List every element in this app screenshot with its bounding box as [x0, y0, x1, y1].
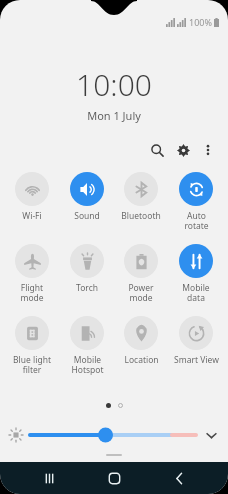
staticText: Flight mode — [20, 282, 44, 303]
staticText: 100% — [189, 16, 212, 28]
button[interactable]: Search — [144, 137, 170, 163]
staticText: 10:00 — [76, 64, 152, 105]
button[interactable]: Location — [115, 315, 167, 367]
button[interactable]: Wi-Fi — [6, 171, 58, 223]
staticText: Power mode — [128, 282, 154, 303]
staticText: Blue light filter — [13, 354, 51, 375]
button[interactable]: Brightness — [30, 424, 196, 446]
button[interactable]: Power mode — [115, 243, 167, 304]
button[interactable]: Expand — [200, 424, 222, 446]
button[interactable]: Flight mode — [6, 243, 58, 304]
staticText: Mon 1 July — [87, 108, 141, 123]
staticText: Smart View — [174, 354, 219, 366]
staticText: Torch — [76, 282, 98, 294]
button[interactable]: Blue light filter — [6, 315, 58, 376]
button[interactable]: Auto rotate — [170, 171, 222, 232]
staticText: Sound — [74, 210, 100, 222]
staticText: Wi-Fi — [22, 210, 42, 222]
button[interactable]: Bluetooth — [115, 171, 167, 223]
button[interactable]: Settings — [170, 137, 196, 163]
button[interactable]: Recent apps — [33, 462, 65, 494]
button[interactable]: Mobile data — [170, 243, 222, 304]
button[interactable]: Home — [98, 462, 130, 494]
button[interactable]: Sound — [61, 171, 113, 223]
staticText: Auto rotate — [184, 210, 209, 231]
button[interactable]: Smart View — [170, 315, 222, 367]
staticText: Mobile Hotspot — [71, 354, 104, 375]
button[interactable]: Mobile Hotspot — [61, 315, 113, 376]
button[interactable]: Torch — [61, 243, 113, 295]
staticText: Mobile data — [182, 282, 210, 303]
staticText: Bluetooth — [121, 210, 161, 222]
button[interactable]: Back — [163, 462, 195, 494]
button[interactable]: More options — [196, 138, 220, 162]
staticText: Location — [124, 354, 159, 366]
